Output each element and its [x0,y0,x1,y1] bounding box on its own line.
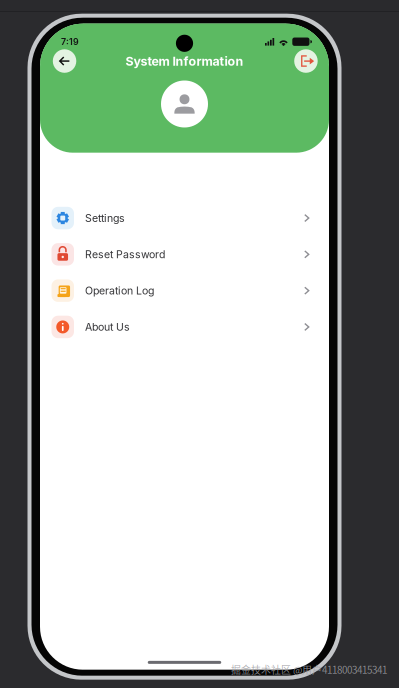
button[interactable]: Settings [40,200,329,236]
staticText: System Information [125,54,243,69]
staticText: Settings [85,212,125,224]
button[interactable]: Back [53,49,76,73]
staticText: About Us [85,321,130,333]
button[interactable]: Log out [294,49,318,73]
staticText: 掘金技术社区 @用户4118003415341 [231,662,387,676]
button[interactable]: Operation Log [40,272,329,309]
button[interactable]: About Us [40,309,329,345]
staticText: Reset Password [85,248,165,261]
button[interactable]: Reset Password [40,236,329,272]
staticText: Operation Log [85,284,154,297]
staticText: 7:19 [61,36,79,47]
